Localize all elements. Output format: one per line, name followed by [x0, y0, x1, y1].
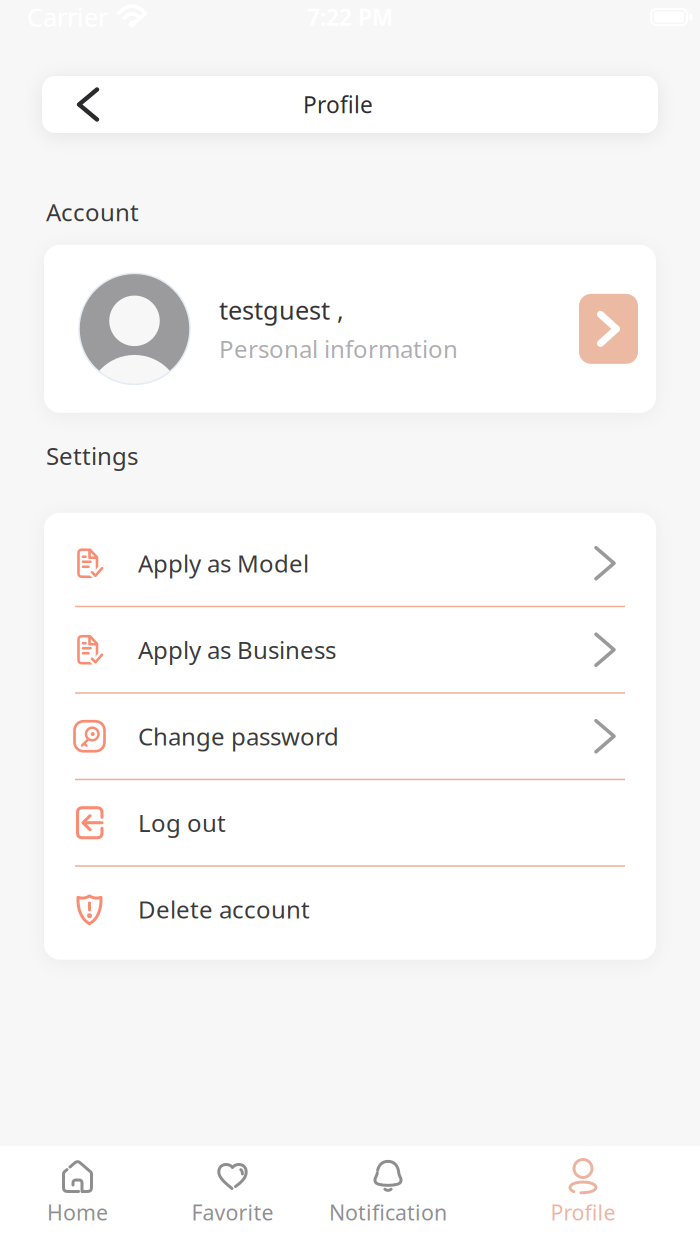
staticText: Delete account [138, 893, 310, 925]
staticText: Change password [138, 720, 339, 752]
staticText: Profile [303, 89, 373, 119]
staticText: Notification [329, 1198, 447, 1226]
button[interactable]: Apply as Business [44, 607, 656, 692]
staticText: Favorite [191, 1198, 273, 1226]
button[interactable]: Notification [310, 1146, 466, 1244]
button[interactable]: Profile [466, 1146, 700, 1244]
staticText: Home [47, 1198, 108, 1226]
staticText: testguest , [219, 293, 344, 327]
staticText: Log out [138, 807, 226, 839]
staticText: Apply as Model [138, 547, 309, 579]
staticText: Profile [550, 1198, 615, 1226]
staticText: Apply as Business [138, 634, 336, 666]
staticText: Account [46, 196, 139, 228]
button[interactable]: Log out [44, 780, 656, 865]
button[interactable]: Delete account [44, 867, 656, 952]
button[interactable]: Favorite [155, 1146, 310, 1244]
button[interactable]: testguest , [0, 245, 700, 413]
button[interactable]: Back [42, 76, 117, 133]
button[interactable]: Apply as Model [44, 521, 656, 606]
staticText: Settings [46, 440, 138, 472]
button[interactable]: Home [0, 1146, 155, 1244]
button[interactable]: Change password [44, 694, 656, 779]
staticText: Personal information [219, 333, 458, 365]
